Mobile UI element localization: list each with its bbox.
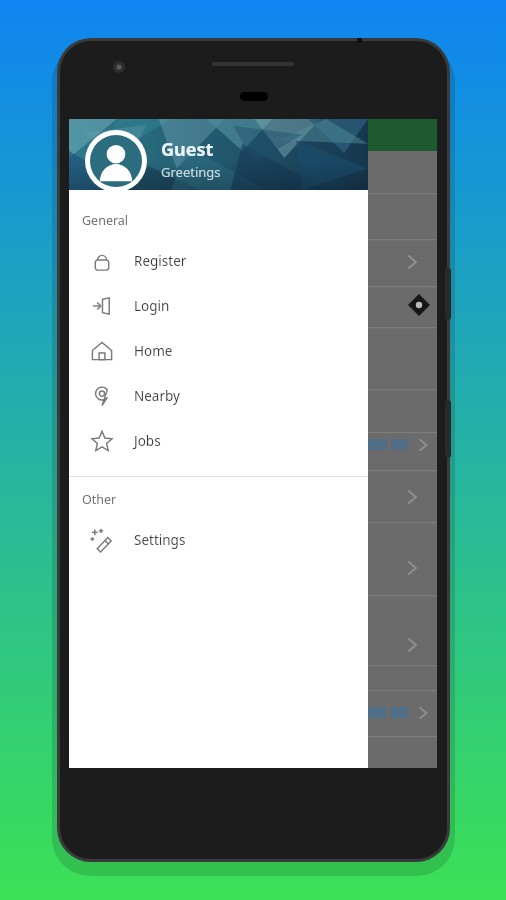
staticText: Guest	[161, 137, 214, 162]
button[interactable]: Register	[69, 238, 368, 283]
staticText: General	[82, 212, 129, 229]
staticText: Nearby	[134, 387, 180, 405]
button[interactable]: Jobs	[69, 418, 368, 463]
staticText: Greetings	[161, 163, 221, 181]
staticText: Jobs	[134, 432, 161, 450]
button[interactable]: Settings	[69, 517, 368, 562]
button[interactable]: Home	[69, 328, 368, 373]
staticText: Register	[134, 252, 187, 270]
staticText: Settings	[134, 531, 186, 549]
button[interactable]: Nearby	[69, 373, 368, 418]
staticText: Login	[134, 297, 170, 315]
button[interactable]: Login	[69, 283, 368, 328]
staticText: Home	[134, 342, 173, 360]
staticText: Other	[82, 491, 117, 508]
